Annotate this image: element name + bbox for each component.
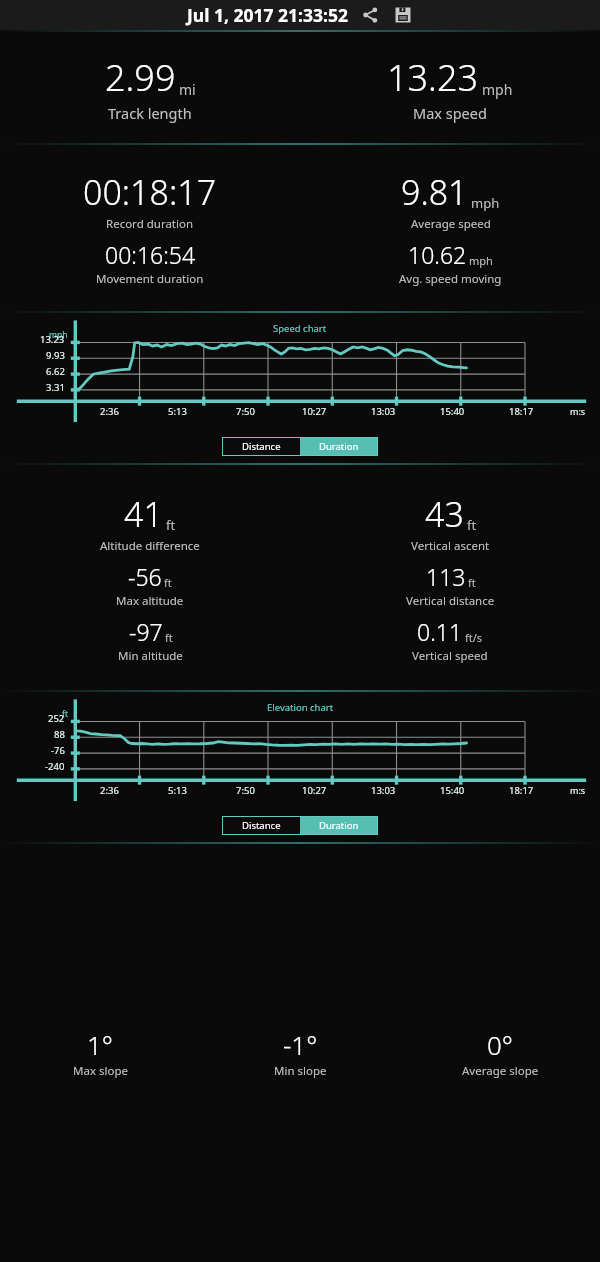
staticText: 2.99 — [105, 53, 176, 102]
staticText: 6.62 — [46, 365, 65, 378]
staticText: Elevation chart — [267, 701, 334, 714]
staticText: Jul 1, 2017 21:33:52 — [187, 3, 348, 27]
staticText: 10:27 — [302, 784, 327, 797]
staticText: Movement duration — [96, 271, 204, 287]
staticText: -240 — [45, 760, 65, 773]
staticText: Record duration — [106, 216, 194, 232]
button[interactable]: 00:16:54 — [96, 239, 204, 287]
button[interactable]: 113 — [406, 561, 495, 609]
staticText: Vertical speed — [412, 648, 488, 664]
staticText: 13.23 — [40, 333, 65, 346]
button[interactable]: 00:18:17 — [83, 169, 217, 232]
button[interactable]: Save — [392, 4, 414, 26]
button[interactable]: Share — [359, 4, 381, 26]
staticText: 5:13 — [168, 405, 187, 418]
staticText: 0° — [487, 1027, 513, 1062]
staticText: Min altitude — [118, 648, 183, 664]
staticText: Avg. speed moving — [399, 271, 502, 287]
button[interactable]: -97 — [118, 616, 183, 664]
staticText: Vertical distance — [406, 593, 495, 609]
staticText: 9.81 — [401, 169, 468, 215]
staticText: mph — [49, 329, 68, 341]
staticText: 00:18:17 — [83, 169, 217, 215]
staticText: m:s — [570, 405, 586, 417]
staticText: 3.31 — [46, 381, 65, 394]
staticText: ft — [467, 516, 477, 534]
button[interactable]: 9.81 — [401, 169, 500, 232]
staticText: mph — [482, 80, 513, 99]
button[interactable]: 13.23 — [300, 53, 600, 123]
staticText: 113 — [426, 561, 466, 592]
button[interactable]: -1° — [200, 1027, 400, 1079]
staticText: Max slope — [73, 1063, 128, 1079]
staticText: Distance — [242, 440, 281, 453]
staticText: 18:17 — [509, 784, 534, 797]
staticText: mph — [469, 253, 493, 268]
staticText: ft — [468, 575, 476, 590]
staticText: 10.62 — [408, 239, 467, 270]
staticText: 2:36 — [100, 405, 119, 418]
staticText: ft — [166, 516, 176, 534]
button[interactable]: 41 — [100, 491, 200, 554]
button[interactable]: Duration — [300, 817, 377, 834]
staticText: 5:13 — [168, 784, 187, 797]
staticText: -56 — [128, 561, 162, 592]
staticText: 1° — [87, 1027, 113, 1062]
staticText: 88 — [54, 728, 65, 741]
staticText: mi — [179, 80, 196, 99]
staticText: Duration — [319, 819, 359, 832]
staticText: ft/s — [465, 630, 483, 645]
staticText: Vertical ascent — [411, 538, 490, 554]
staticText: Max speed — [413, 103, 487, 123]
staticText: ft — [62, 708, 68, 720]
staticText: 15:40 — [440, 784, 465, 797]
staticText: Max altitude — [116, 593, 184, 609]
staticText: 13.23 — [387, 53, 479, 102]
staticText: ft — [164, 575, 172, 590]
staticText: 13:03 — [371, 405, 396, 418]
staticText: 15:40 — [440, 405, 465, 418]
button[interactable]: 43 — [411, 491, 490, 554]
button[interactable]: 2.99 — [0, 53, 300, 123]
staticText: Average speed — [411, 216, 491, 232]
staticText: mph — [471, 194, 500, 212]
staticText: 18:17 — [509, 405, 534, 418]
button[interactable]: 10.62 — [399, 239, 502, 287]
staticText: Duration — [319, 440, 359, 453]
button[interactable]: 0.11 — [412, 616, 488, 664]
staticText: Track length — [108, 103, 192, 123]
staticText: -76 — [51, 744, 65, 757]
staticText: -1° — [283, 1027, 318, 1062]
staticText: Altitude difference — [100, 538, 200, 554]
staticText: 43 — [425, 491, 464, 537]
staticText: Average slope — [462, 1063, 539, 1079]
staticText: 2:36 — [100, 784, 119, 797]
button[interactable]: Distance — [223, 438, 300, 455]
staticText: m:s — [570, 784, 586, 796]
staticText: 252 — [48, 712, 65, 725]
staticText: Distance — [242, 819, 281, 832]
staticText: 0.11 — [417, 616, 463, 647]
staticText: ft — [165, 630, 173, 645]
button[interactable]: 1° — [0, 1027, 200, 1079]
staticText: 10:27 — [302, 405, 327, 418]
staticText: 7:50 — [236, 405, 255, 418]
button[interactable]: Duration — [300, 438, 377, 455]
staticText: Speed chart — [273, 322, 327, 335]
button[interactable]: -56 — [116, 561, 184, 609]
staticText: -97 — [129, 616, 163, 647]
staticText: 7:50 — [236, 784, 255, 797]
staticText: 00:16:54 — [105, 239, 196, 270]
staticText: Min slope — [274, 1063, 327, 1079]
button[interactable]: Distance — [223, 817, 300, 834]
staticText: 13:03 — [371, 784, 396, 797]
staticText: 41 — [124, 491, 163, 537]
staticText: 9.93 — [46, 349, 65, 362]
button[interactable]: 0° — [400, 1027, 600, 1079]
